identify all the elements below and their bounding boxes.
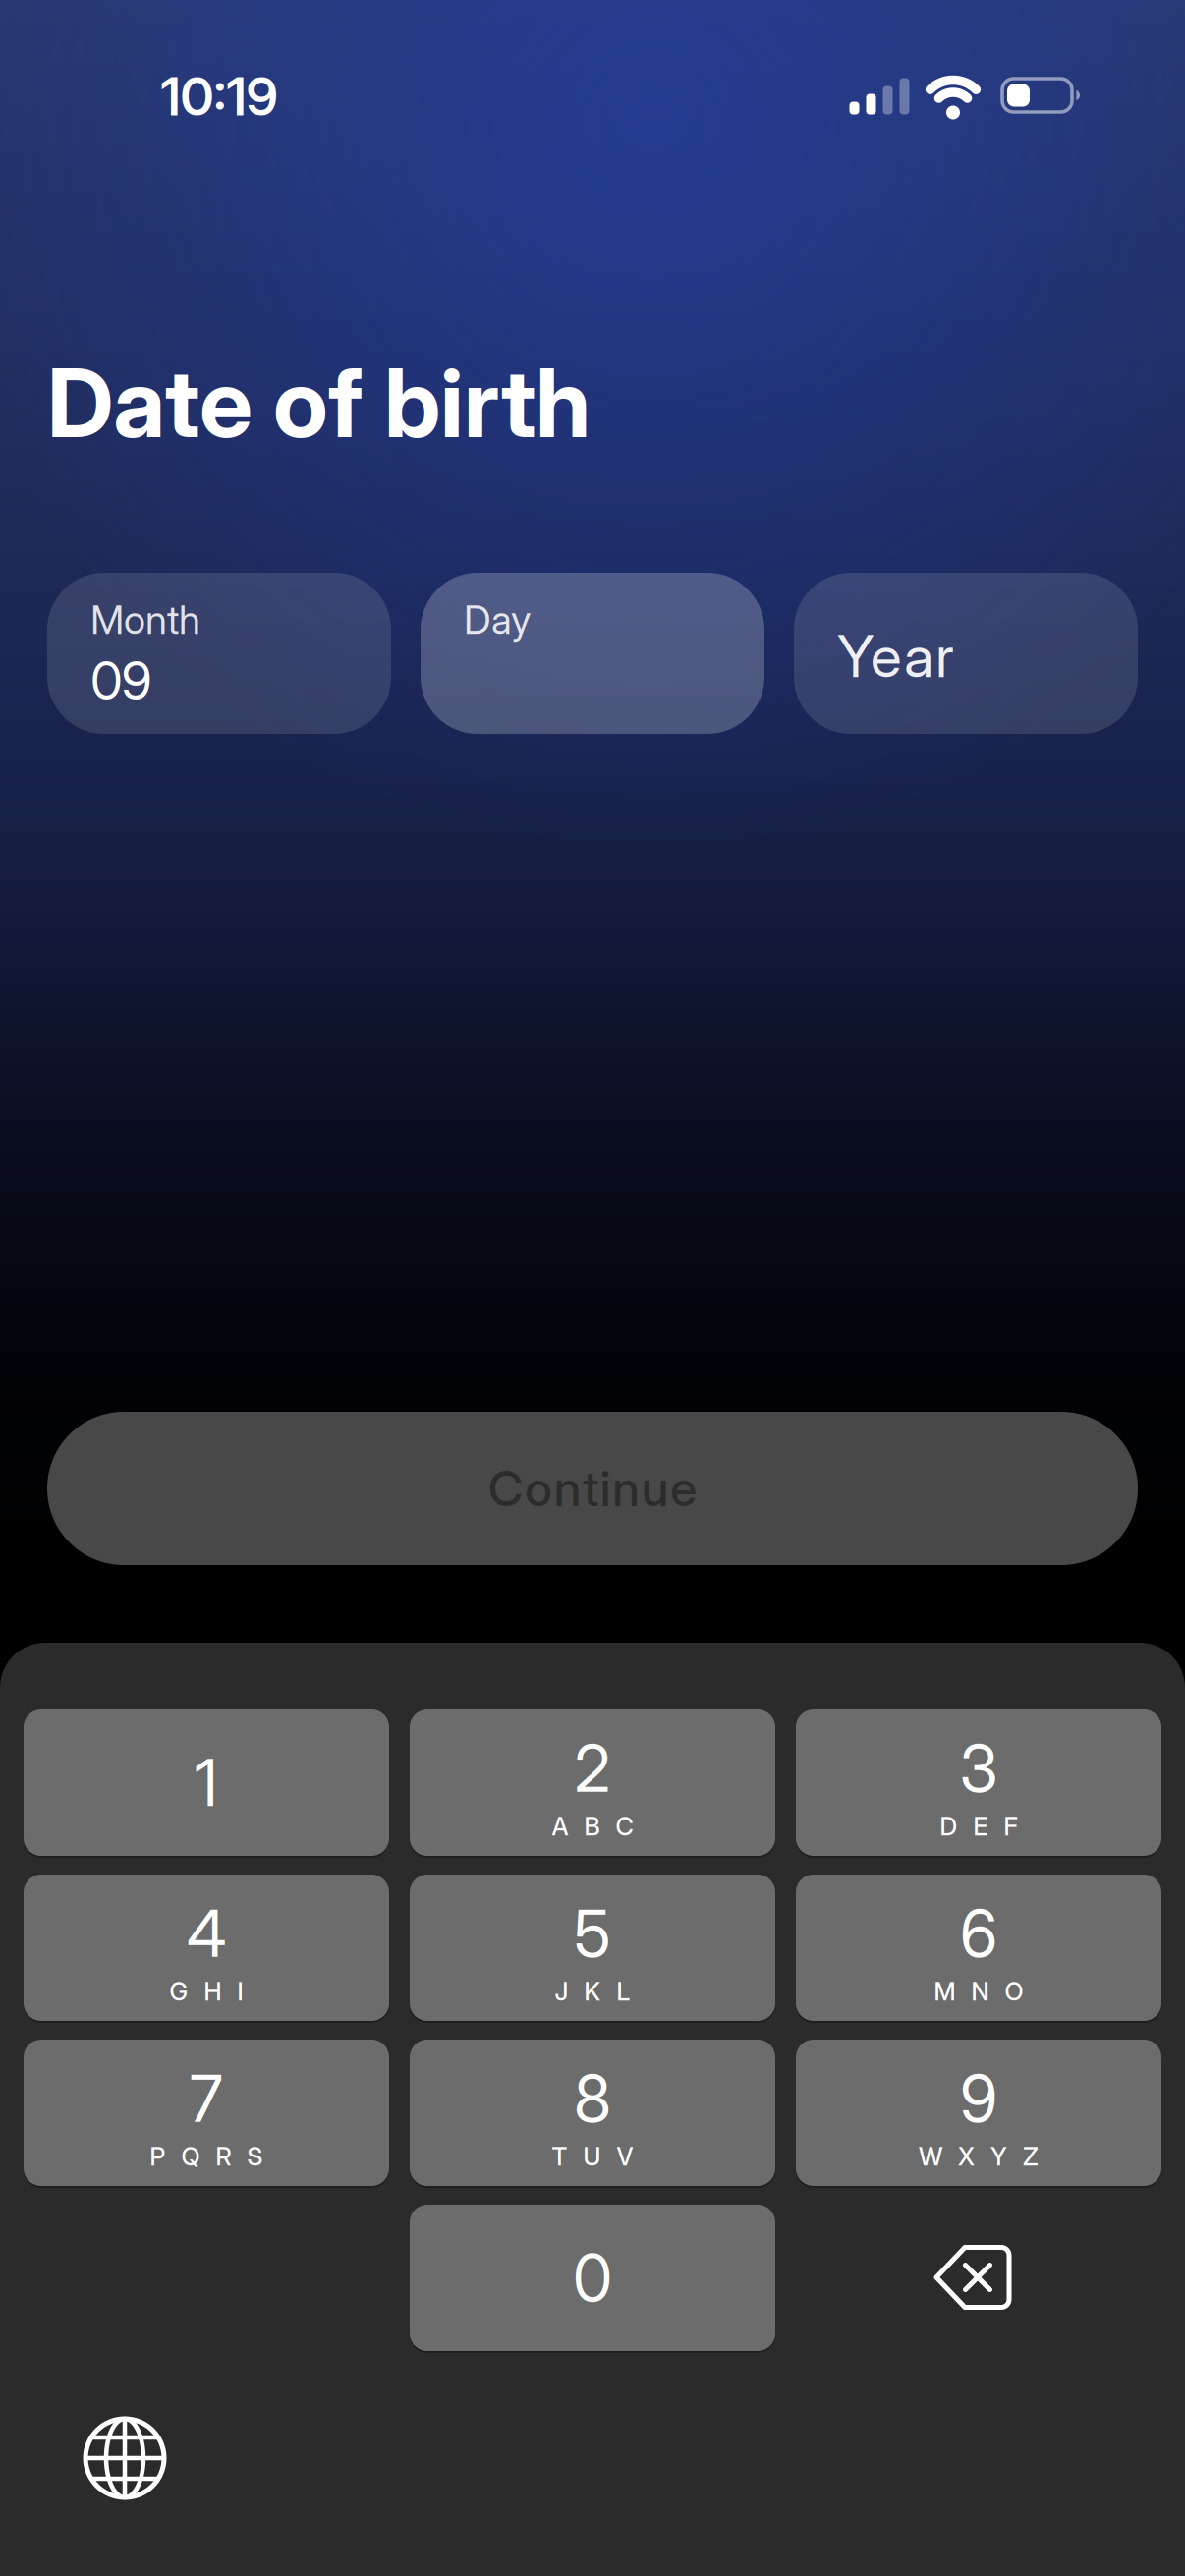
staticText: 6: [960, 1896, 997, 1971]
staticText: 3: [959, 1731, 998, 1806]
button[interactable]: 4: [24, 1875, 389, 2021]
staticText: MNO: [934, 1977, 1023, 2006]
button[interactable]: 2: [410, 1709, 775, 1856]
staticText: 1: [195, 1745, 218, 1821]
staticText: 0: [573, 2240, 612, 2316]
button[interactable]: Month: [47, 573, 391, 734]
staticText: Month: [90, 596, 200, 643]
button[interactable]: 5: [410, 1875, 775, 2021]
staticText: PQRS: [150, 2142, 263, 2171]
button[interactable]: Year: [794, 573, 1138, 734]
staticText: GHI: [169, 1977, 243, 2006]
staticText: 10:19: [161, 65, 278, 127]
staticText: 8: [574, 2061, 611, 2136]
staticText: 7: [190, 2061, 223, 2136]
staticText: Continue: [488, 1460, 697, 1517]
button[interactable]: Next keyboard: [83, 2416, 167, 2500]
staticText: 09: [90, 650, 152, 711]
staticText: TUV: [552, 2142, 633, 2171]
button[interactable]: 1: [24, 1709, 389, 1856]
button[interactable]: 9: [796, 2040, 1161, 2186]
staticText: 9: [960, 2061, 997, 2136]
button[interactable]: 6: [796, 1875, 1161, 2021]
staticText: 2: [574, 1731, 611, 1806]
button[interactable]: 8: [410, 2040, 775, 2186]
staticText: ABC: [552, 1812, 633, 1841]
staticText: Date of birth: [47, 347, 591, 459]
button[interactable]: Continue: [47, 1412, 1138, 1565]
button[interactable]: Day: [421, 573, 764, 734]
button[interactable]: Delete: [791, 2205, 1157, 2351]
button[interactable]: 0: [410, 2205, 775, 2351]
button[interactable]: 7: [24, 2040, 389, 2186]
button[interactable]: 3: [796, 1709, 1161, 1856]
staticText: WXYZ: [919, 2142, 1039, 2171]
staticText: 5: [574, 1896, 611, 1971]
staticText: Day: [464, 596, 531, 643]
staticText: 4: [187, 1896, 226, 1971]
staticText: Year: [837, 622, 954, 690]
staticText: DEF: [940, 1812, 1017, 1841]
staticText: JKL: [555, 1977, 630, 2006]
